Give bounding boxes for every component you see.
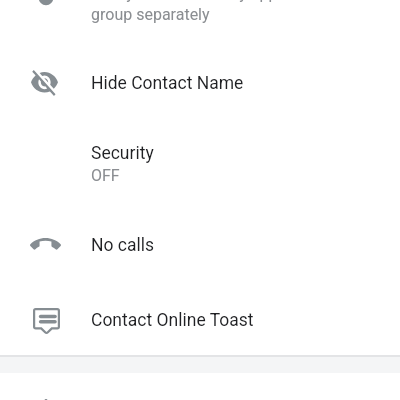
staticText: OFF (91, 166, 120, 185)
staticText: Contact Online Toast (91, 310, 254, 331)
button[interactable]: Hide contact name (0, 59, 400, 107)
staticText: Hide Contact Name (91, 73, 244, 94)
other: Notification grouping (31, 0, 61, 4)
staticText: group separately (91, 5, 210, 24)
button[interactable]: Notification grouping (0, 0, 400, 28)
other: Contact online toast (33, 308, 60, 334)
button[interactable]: No calls (0, 221, 400, 269)
staticText: Notify me about every app (91, 0, 278, 3)
button[interactable]: Contact online toast (0, 296, 400, 344)
other: No calls (30, 238, 61, 249)
staticText: No calls (91, 235, 155, 256)
button[interactable]: Security (0, 135, 400, 193)
staticText: Security (91, 143, 154, 164)
other: Hide contact name (31, 70, 58, 96)
